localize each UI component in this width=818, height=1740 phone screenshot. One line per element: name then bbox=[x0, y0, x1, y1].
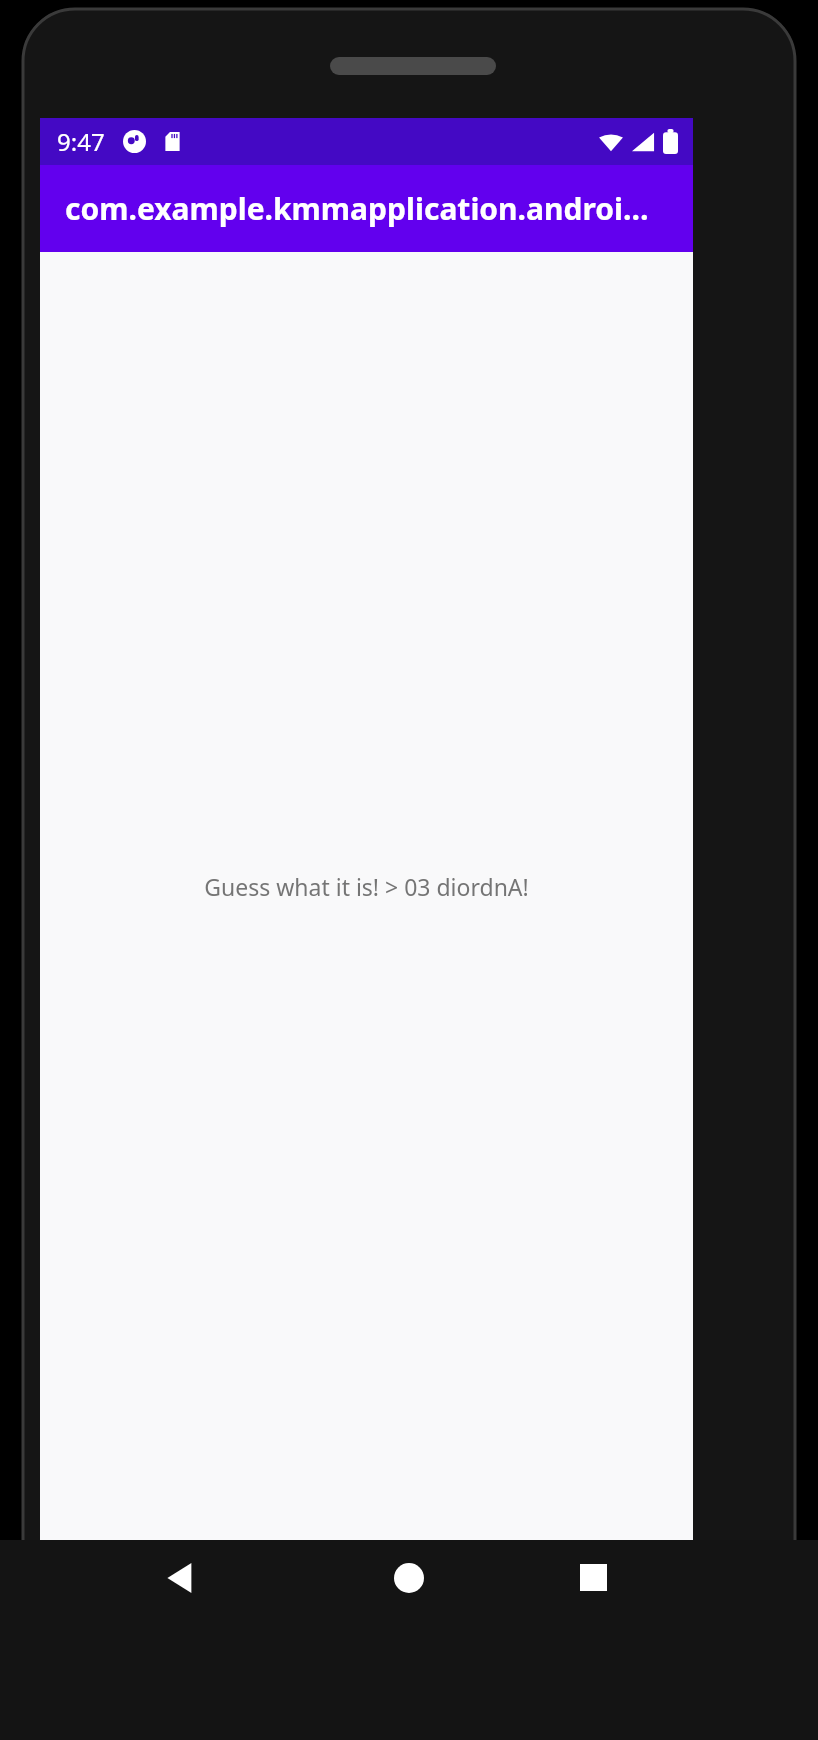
button[interactable]: com.example.kmmapplication.androi… bbox=[40, 165, 693, 252]
button[interactable]: Back bbox=[140, 1540, 220, 1615]
staticText: 9:47 bbox=[57, 125, 105, 158]
button[interactable]: Recent apps bbox=[553, 1540, 633, 1615]
button[interactable]: Home bbox=[369, 1540, 449, 1615]
staticText: Guess what it is! > 03 diordnA! bbox=[204, 871, 529, 902]
staticText: com.example.kmmapplication.androi… bbox=[65, 188, 649, 229]
